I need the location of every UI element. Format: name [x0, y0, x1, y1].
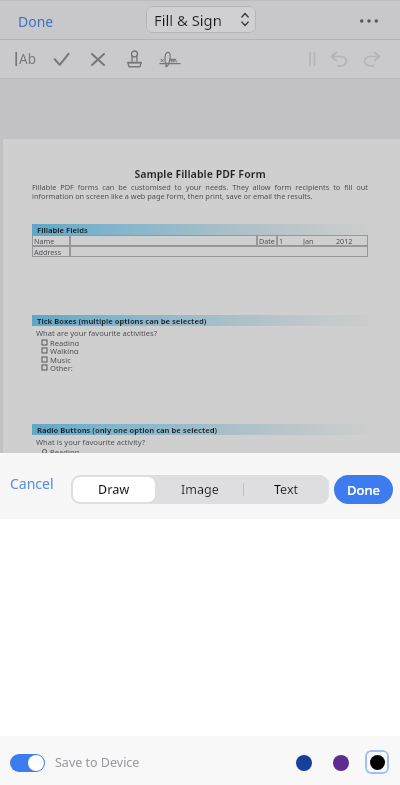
button[interactable]: Done [10, 9, 62, 34]
staticText: 2012 [336, 236, 353, 246]
staticText: What is your favourite activity? [36, 437, 146, 447]
staticText: Tick Boxes (multiple options can be sele… [37, 316, 207, 326]
button[interactable]: Purple ink [328, 750, 353, 775]
button[interactable]: Fill & Sign [146, 6, 256, 33]
staticText: Draw [98, 481, 130, 498]
button[interactable]: Done [334, 475, 393, 504]
button[interactable]: Add text [7, 43, 43, 75]
button[interactable]: Stamp [117, 43, 151, 75]
staticText: Jan [303, 236, 314, 246]
staticText: What are your favourite activities? [36, 328, 157, 338]
staticText: Fillable Fields [37, 225, 88, 235]
staticText: Sample Fillable PDF Form [32, 167, 368, 181]
button[interactable]: Redo [355, 43, 389, 75]
staticText: Date [259, 236, 275, 246]
button[interactable]: More options [353, 5, 385, 37]
staticText: Name [34, 236, 55, 246]
staticText: Done [18, 12, 54, 31]
staticText: Fill & Sign [154, 10, 222, 30]
staticText: Reading [50, 447, 80, 455]
button[interactable]: Black ink [365, 750, 389, 774]
staticText: Reading [50, 338, 80, 346]
button[interactable]: Blue ink [291, 750, 316, 775]
button[interactable]: Cancel [4, 469, 60, 498]
staticText: Image [181, 481, 219, 498]
staticText: Ab [19, 50, 36, 68]
staticText: Walking [50, 346, 79, 354]
staticText: Text [274, 481, 299, 498]
staticText: Done [347, 481, 381, 499]
staticText: Save to Device [55, 754, 140, 771]
staticText: Fillable PDF forms can be customised to … [32, 182, 368, 201]
staticText: Cancel [10, 474, 54, 493]
staticText: Radio Buttons (only one option can be se… [37, 425, 218, 435]
staticText: Other: [50, 363, 73, 371]
button[interactable]: Signature [153, 43, 187, 75]
button[interactable]: Text [243, 475, 329, 504]
staticText: 1 [279, 236, 284, 246]
staticText: Music [50, 355, 71, 363]
button[interactable]: Cross mark [81, 43, 115, 75]
button[interactable]: Undo [322, 43, 356, 75]
button[interactable]: Check mark [44, 43, 78, 75]
staticText: Address [34, 247, 62, 257]
button[interactable]: Draw [73, 477, 155, 502]
button[interactable]: Image [157, 475, 243, 504]
button[interactable]: Save to Device [6, 748, 146, 777]
